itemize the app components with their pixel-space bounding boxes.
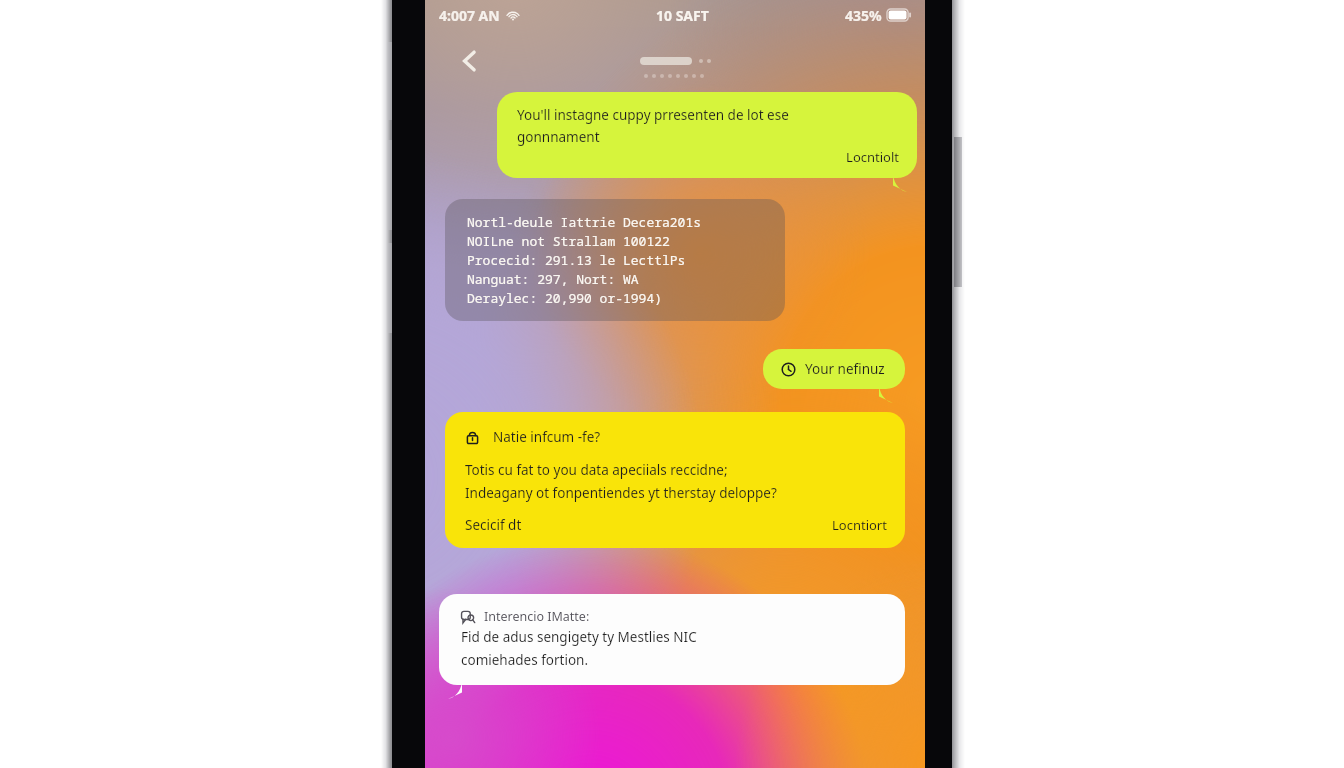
staticText: 10 SAFT xyxy=(656,6,709,25)
staticText: Locntiolt xyxy=(517,148,899,166)
staticText: Natie infcum -fe? xyxy=(493,428,601,446)
staticText: Your nefinuz xyxy=(805,360,885,378)
button[interactable]: Interencio IMatte: xyxy=(439,594,905,685)
staticText: Locntiort xyxy=(832,516,887,534)
staticText: Nortl-deule Iattrie Decera201s NOILne no… xyxy=(467,213,702,307)
button[interactable]: You'll instagne cuppy prresenten de lot … xyxy=(497,92,917,178)
button[interactable]: Your nefinuz xyxy=(763,349,905,389)
staticText: Totis cu fat to you data apeciials recci… xyxy=(465,461,777,502)
staticText: You'll instagne cuppy prresenten de lot … xyxy=(517,106,789,146)
button[interactable]: Nortl-deule Iattrie Decera201s NOILne no… xyxy=(445,199,785,321)
staticText: Interencio IMatte: xyxy=(484,608,590,625)
button[interactable]: Natie infcum -fe? xyxy=(445,412,905,548)
staticText: Fid de adus sengigety ty Mestlies NIC co… xyxy=(461,628,697,669)
staticText: 4:007 AN xyxy=(439,6,500,25)
staticText: 435% xyxy=(845,6,882,25)
staticText: Secicif dt xyxy=(465,516,522,534)
button[interactable]: Back xyxy=(453,44,487,78)
